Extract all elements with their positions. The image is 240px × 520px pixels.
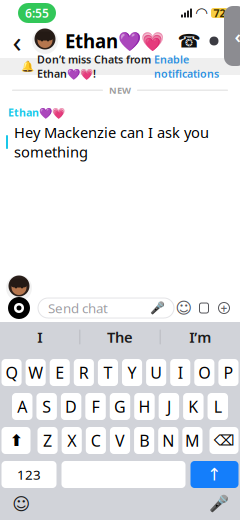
staticText: ↑ — [207, 465, 222, 484]
button[interactable]: Space — [61, 461, 185, 488]
button[interactable]: Dictation — [206, 489, 232, 519]
staticText: K — [188, 396, 198, 417]
staticText: 🔔 — [21, 60, 34, 73]
button[interactable]: B — [134, 427, 154, 454]
staticText: E — [55, 362, 64, 383]
staticText: NEW — [109, 84, 131, 96]
staticText: I — [37, 327, 42, 347]
staticText: N — [162, 430, 174, 451]
staticText: U — [150, 362, 162, 383]
button[interactable]: P — [218, 359, 238, 386]
button[interactable]: I’m — [161, 322, 240, 352]
staticText: ☎ — [177, 30, 200, 52]
button[interactable]: Y — [122, 359, 142, 386]
button[interactable]: F — [85, 393, 106, 420]
staticText: Q — [6, 362, 18, 383]
button[interactable]: Call — [176, 24, 202, 58]
button[interactable]: T — [98, 359, 118, 386]
button[interactable]: 🔔 — [0, 58, 240, 75]
button[interactable]: K — [183, 393, 203, 420]
staticText: W — [28, 362, 43, 383]
staticText: L — [214, 396, 222, 417]
button[interactable]: W — [26, 359, 46, 386]
staticText: Enable notifications — [154, 52, 219, 81]
staticText: ⌫ — [213, 432, 234, 449]
staticText: ☺ — [12, 494, 30, 514]
staticText: 6:55 — [25, 5, 49, 21]
staticText: F — [92, 396, 100, 417]
staticText: ⬆ — [9, 431, 22, 450]
staticText: J — [167, 396, 171, 417]
staticText: D — [65, 396, 77, 417]
button[interactable]: U — [146, 359, 166, 386]
staticText: V — [115, 430, 125, 451]
button[interactable]: Send — [190, 461, 238, 488]
button[interactable]: 123 — [1, 461, 56, 488]
button[interactable]: Q — [1, 359, 22, 386]
button[interactable]: Send chat — [38, 298, 174, 318]
staticText: C — [91, 430, 101, 451]
staticText: ☺ — [175, 299, 192, 317]
staticText: Ethan💜💗 — [8, 105, 65, 120]
button[interactable]: Stickers — [194, 297, 214, 319]
button[interactable]: S — [36, 393, 57, 420]
button[interactable]: Emoji — [174, 297, 194, 319]
staticText: Send chat — [48, 299, 108, 317]
button[interactable]: Delete — [209, 427, 238, 454]
button[interactable]: More options — [202, 24, 226, 58]
button[interactable]: O — [194, 359, 214, 386]
button[interactable]: Back — [4, 24, 30, 58]
button[interactable]: C — [86, 427, 106, 454]
staticText: ◠ — [196, 5, 207, 21]
button[interactable]: Shift — [1, 427, 30, 454]
staticText: T — [103, 362, 112, 383]
staticText: 123 — [17, 466, 41, 483]
staticText: ‹ — [234, 24, 240, 48]
button[interactable]: R — [74, 359, 94, 386]
staticText: ‹ — [12, 21, 21, 60]
staticText: I’m — [189, 327, 211, 347]
staticText: P — [223, 362, 233, 383]
button[interactable]: H — [134, 393, 155, 420]
staticText: The — [107, 327, 133, 347]
staticText: 🎤 — [209, 495, 229, 513]
button[interactable]: Z — [37, 427, 58, 454]
staticText: I — [178, 362, 183, 383]
staticText: Hey Mackenzie can I ask you something — [14, 123, 209, 162]
button[interactable]: J — [159, 393, 179, 420]
staticText: 🎤 — [150, 301, 165, 315]
staticText: S — [42, 396, 51, 417]
staticText: A — [17, 396, 27, 417]
staticText: 72 — [213, 6, 225, 20]
button[interactable]: Emoji keyboard — [8, 489, 34, 519]
staticText: B — [139, 430, 149, 451]
button[interactable]: E — [50, 359, 70, 386]
button[interactable]: D — [61, 393, 81, 420]
button[interactable]: X — [62, 427, 82, 454]
staticText: Y — [128, 362, 137, 383]
staticText: Z — [43, 430, 52, 451]
staticText: X — [67, 430, 76, 451]
button[interactable]: Add attachment — [214, 297, 234, 319]
staticText: O — [198, 362, 210, 383]
staticText: H — [138, 396, 150, 417]
staticText: R — [79, 362, 89, 383]
staticText: Don’t miss Chats from Ethan💜💗! — [37, 52, 151, 81]
button[interactable]: The — [80, 322, 160, 352]
button[interactable]: V — [110, 427, 130, 454]
staticText: + — [220, 300, 227, 316]
button[interactable]: Camera — [6, 295, 32, 321]
staticText: Ethan💜💗 — [65, 29, 164, 53]
button[interactable]: I — [0, 322, 79, 352]
button[interactable]: I — [170, 359, 190, 386]
staticText: G — [114, 396, 126, 417]
button[interactable]: L — [208, 393, 228, 420]
button[interactable]: Open friends — [224, 6, 240, 66]
button[interactable]: N — [158, 427, 178, 454]
staticText: M — [185, 430, 200, 451]
button[interactable]: G — [110, 393, 130, 420]
button[interactable]: A — [12, 393, 32, 420]
button[interactable]: M — [182, 427, 202, 454]
